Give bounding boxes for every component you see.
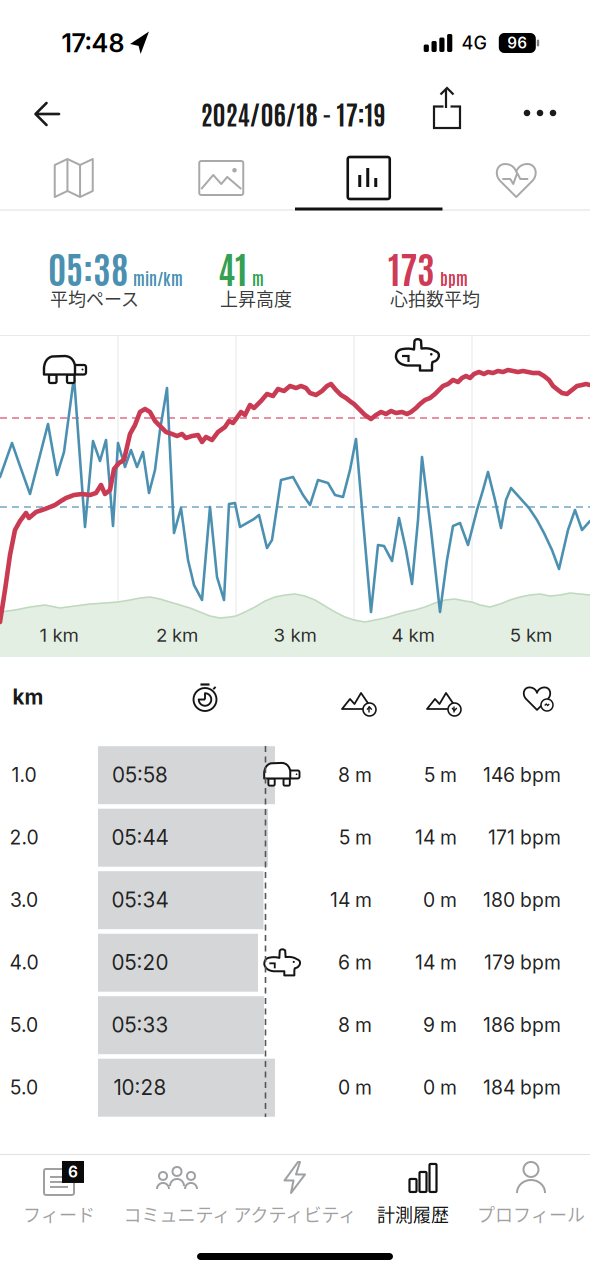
staticText: 173 [388,243,435,291]
staticText: 2 km [156,624,198,646]
staticText: 2024/06/18 - 17:19 [200,96,385,130]
staticText: 計測履歴 [377,1201,449,1227]
button[interactable]: Share [426,87,468,137]
staticText: 146 bpm [483,763,561,787]
staticText: 平均ペース [50,285,139,311]
staticText: 4G [461,32,486,54]
staticText: 14 m [330,888,372,912]
staticText: 5 km [510,624,552,646]
button[interactable]: Photos [185,147,257,209]
staticText: 180 bpm [483,888,561,912]
staticText: 6 m [338,951,372,974]
staticText: 5.0 [10,1013,38,1037]
button[interactable]: Map [41,145,107,211]
staticText: 0 m [423,888,457,912]
staticText: 05:34 [111,887,168,912]
staticText: 14 m [415,826,457,849]
staticText: 9 m [423,1013,457,1037]
button[interactable]: 計測履歴 [343,1161,483,1227]
staticText: 3 km [273,624,316,646]
staticText: 8 m [338,1013,372,1037]
staticText: 05:38 [48,243,128,291]
button[interactable]: More [514,100,566,126]
staticText: bpm [440,268,468,288]
staticText: 1.0 [11,763,36,787]
staticText: 05:58 [112,762,168,787]
staticText: 14 m [415,951,457,974]
staticText: m [252,268,264,288]
staticText: 41 [218,243,247,291]
button[interactable]: Heart rate [480,145,552,211]
staticText: 上昇高度 [220,285,292,311]
staticText: 179 bpm [484,951,561,974]
staticText: 4.0 [9,951,38,974]
staticText: 184 bpm [483,1076,561,1099]
staticText: 1 km [39,624,78,646]
staticText: 96 [507,34,527,52]
staticText: 17:48 [61,28,124,58]
staticText: 10:28 [113,1075,166,1100]
staticText: 0 m [423,1076,457,1099]
button[interactable]: アクティビティ [225,1161,365,1227]
staticText: km [12,684,43,709]
staticText: 05:33 [111,1012,168,1037]
staticText: 心拍数平均 [390,285,480,311]
staticText: 05:44 [111,825,168,850]
staticText: 6 [68,1163,78,1181]
staticText: プロフィール [477,1201,585,1227]
staticText: 171 bpm [488,826,561,849]
staticText: アクティビティ [233,1201,356,1227]
staticText: 8 m [338,763,372,787]
staticText: 186 bpm [483,1013,561,1037]
button[interactable]: Back [24,91,70,136]
staticText: 05:20 [111,950,168,975]
button[interactable]: プロフィール [461,1161,590,1227]
staticText: 0 m [338,1076,372,1099]
staticText: フィード [23,1201,95,1227]
staticText: 5 m [339,826,372,849]
staticText: min/km [133,268,183,288]
staticText: コミュニティ [123,1201,230,1227]
staticText: 5 m [424,763,457,787]
button[interactable]: 6 [0,1161,129,1227]
staticText: 4 km [391,624,434,646]
staticText: 5.0 [10,1076,38,1099]
button[interactable]: Charts [336,145,402,211]
staticText: 3.0 [10,888,38,912]
button[interactable]: コミュニティ [107,1161,247,1227]
staticText: 2.0 [9,826,38,849]
